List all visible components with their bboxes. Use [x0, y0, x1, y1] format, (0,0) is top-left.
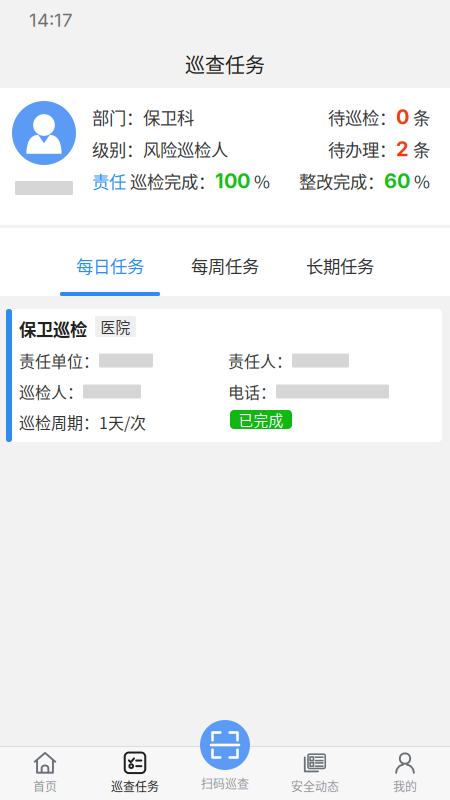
staticText: 巡查任务: [111, 777, 159, 795]
button[interactable]: 每周任务: [167, 228, 282, 296]
staticText: 保卫巡检: [19, 316, 87, 341]
staticText: 100: [215, 169, 250, 193]
staticText: 责任: [92, 168, 126, 194]
staticText: 0: [396, 105, 409, 129]
staticText: 巡查任务: [185, 49, 265, 78]
staticText: 待巡检：: [328, 104, 396, 130]
staticText: 责任单位：: [19, 349, 99, 372]
button[interactable]: 首页: [0, 747, 90, 800]
staticText: 长期任务: [306, 253, 374, 278]
button[interactable]: 我的: [360, 747, 450, 800]
staticText: 条: [409, 136, 430, 162]
staticText: 我的: [393, 777, 417, 795]
button[interactable]: 扫码巡查: [200, 720, 250, 770]
staticText: 2: [396, 137, 409, 161]
staticText: 整改完成：: [299, 168, 384, 194]
staticText: %: [250, 168, 270, 194]
staticText: 条: [409, 104, 430, 130]
staticText: 每周任务: [191, 253, 259, 278]
staticText: 首页: [33, 777, 57, 795]
staticText: 责任人：: [228, 349, 292, 372]
staticText: 14:17: [29, 9, 73, 31]
staticText: 部门：保卫科: [92, 104, 194, 130]
staticText: 已完成: [238, 409, 283, 430]
staticText: 医院: [100, 316, 130, 337]
staticText: 安全动态: [291, 777, 339, 795]
staticText: 巡检周期：1天/次: [19, 410, 146, 434]
staticText: %: [410, 168, 430, 194]
staticText: 电话：: [228, 380, 276, 403]
button[interactable]: 保卫巡检: [0, 309, 450, 442]
staticText: 60: [384, 169, 410, 193]
staticText: 巡检人：: [19, 380, 83, 403]
staticText: 扫码巡查: [201, 775, 249, 792]
button[interactable]: 巡查任务: [90, 747, 180, 800]
button[interactable]: 长期任务: [282, 228, 397, 296]
button[interactable]: 每日任务: [52, 228, 167, 296]
button[interactable]: 扫码巡查: [180, 747, 270, 800]
staticText: 级别：风险巡检人: [92, 136, 228, 162]
staticText: 巡检完成：: [126, 168, 215, 194]
staticText: 每日任务: [76, 253, 144, 278]
staticText: 待办理：: [328, 136, 396, 162]
button[interactable]: 安全动态: [270, 747, 360, 800]
